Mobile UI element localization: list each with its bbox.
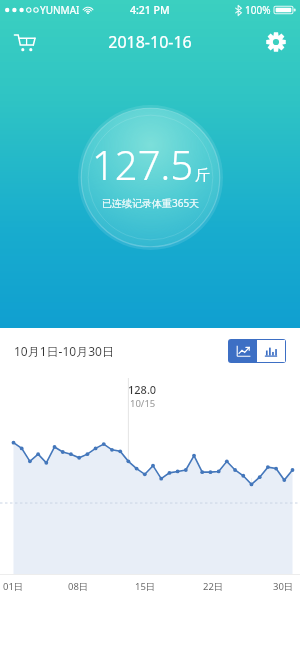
button[interactable]: Shop	[6, 24, 42, 60]
button[interactable]: Line chart	[229, 340, 257, 362]
button[interactable]: Bar chart	[257, 340, 285, 362]
staticText: 斤	[195, 166, 210, 185]
staticText: 01日	[3, 580, 24, 593]
staticText: 30日	[273, 580, 294, 593]
staticText: 4:21 PM	[130, 3, 170, 17]
staticText: 08日	[68, 580, 89, 593]
staticText: 2018-10-16	[108, 31, 192, 53]
staticText: YUNMAI	[40, 3, 80, 17]
staticText: 10/15	[130, 397, 156, 410]
staticText: 100%	[245, 3, 271, 17]
staticText: 10月1日-10月30日	[14, 343, 114, 359]
button[interactable]: Settings	[258, 24, 294, 60]
staticText: 22日	[203, 580, 224, 593]
staticText: 128.0	[128, 382, 157, 397]
staticText: 15日	[135, 580, 156, 593]
staticText: 127.5	[92, 137, 194, 191]
staticText: 已连续记录体重365天	[102, 196, 200, 210]
